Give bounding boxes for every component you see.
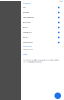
- button[interactable]: Chat: [54, 92, 61, 99]
- button[interactable]: Contact us: [21, 45, 32, 48]
- staticText: Need a hand?: [23, 42, 33, 43]
- button[interactable]: Pay: [21, 5, 64, 10]
- staticText: Calculators: [23, 32, 32, 33]
- staticText: Terms and conditions apply to all produc…: [23, 59, 59, 63]
- button[interactable]: Banking: [21, 10, 64, 15]
- button[interactable]: Rates: [21, 35, 64, 40]
- staticText: Banking: [23, 12, 29, 13]
- staticText: Log in: [23, 53, 27, 55]
- staticText: Find a branch: [23, 48, 33, 50]
- button[interactable]: Insurance: [21, 20, 64, 25]
- staticText: Invest: [23, 27, 28, 28]
- button[interactable]: Invest: [21, 25, 64, 30]
- staticText: Rates: [23, 37, 28, 38]
- button[interactable]: Need a hand?: [21, 40, 64, 45]
- staticText: Pay: [23, 7, 26, 8]
- button[interactable]: Financial Advice: [21, 15, 64, 20]
- staticText: Financial Advice: [23, 17, 34, 18]
- staticText: ▮▲▬: [59, 0, 62, 2]
- button[interactable]: Log in: [21, 50, 27, 55]
- staticText: Contact us: [23, 46, 32, 47]
- button[interactable]: Calculators: [21, 30, 64, 35]
- staticText: Insurance: [23, 22, 31, 23]
- staticText: Products: [23, 3, 31, 4]
- button[interactable]: Products: [21, 2, 31, 5]
